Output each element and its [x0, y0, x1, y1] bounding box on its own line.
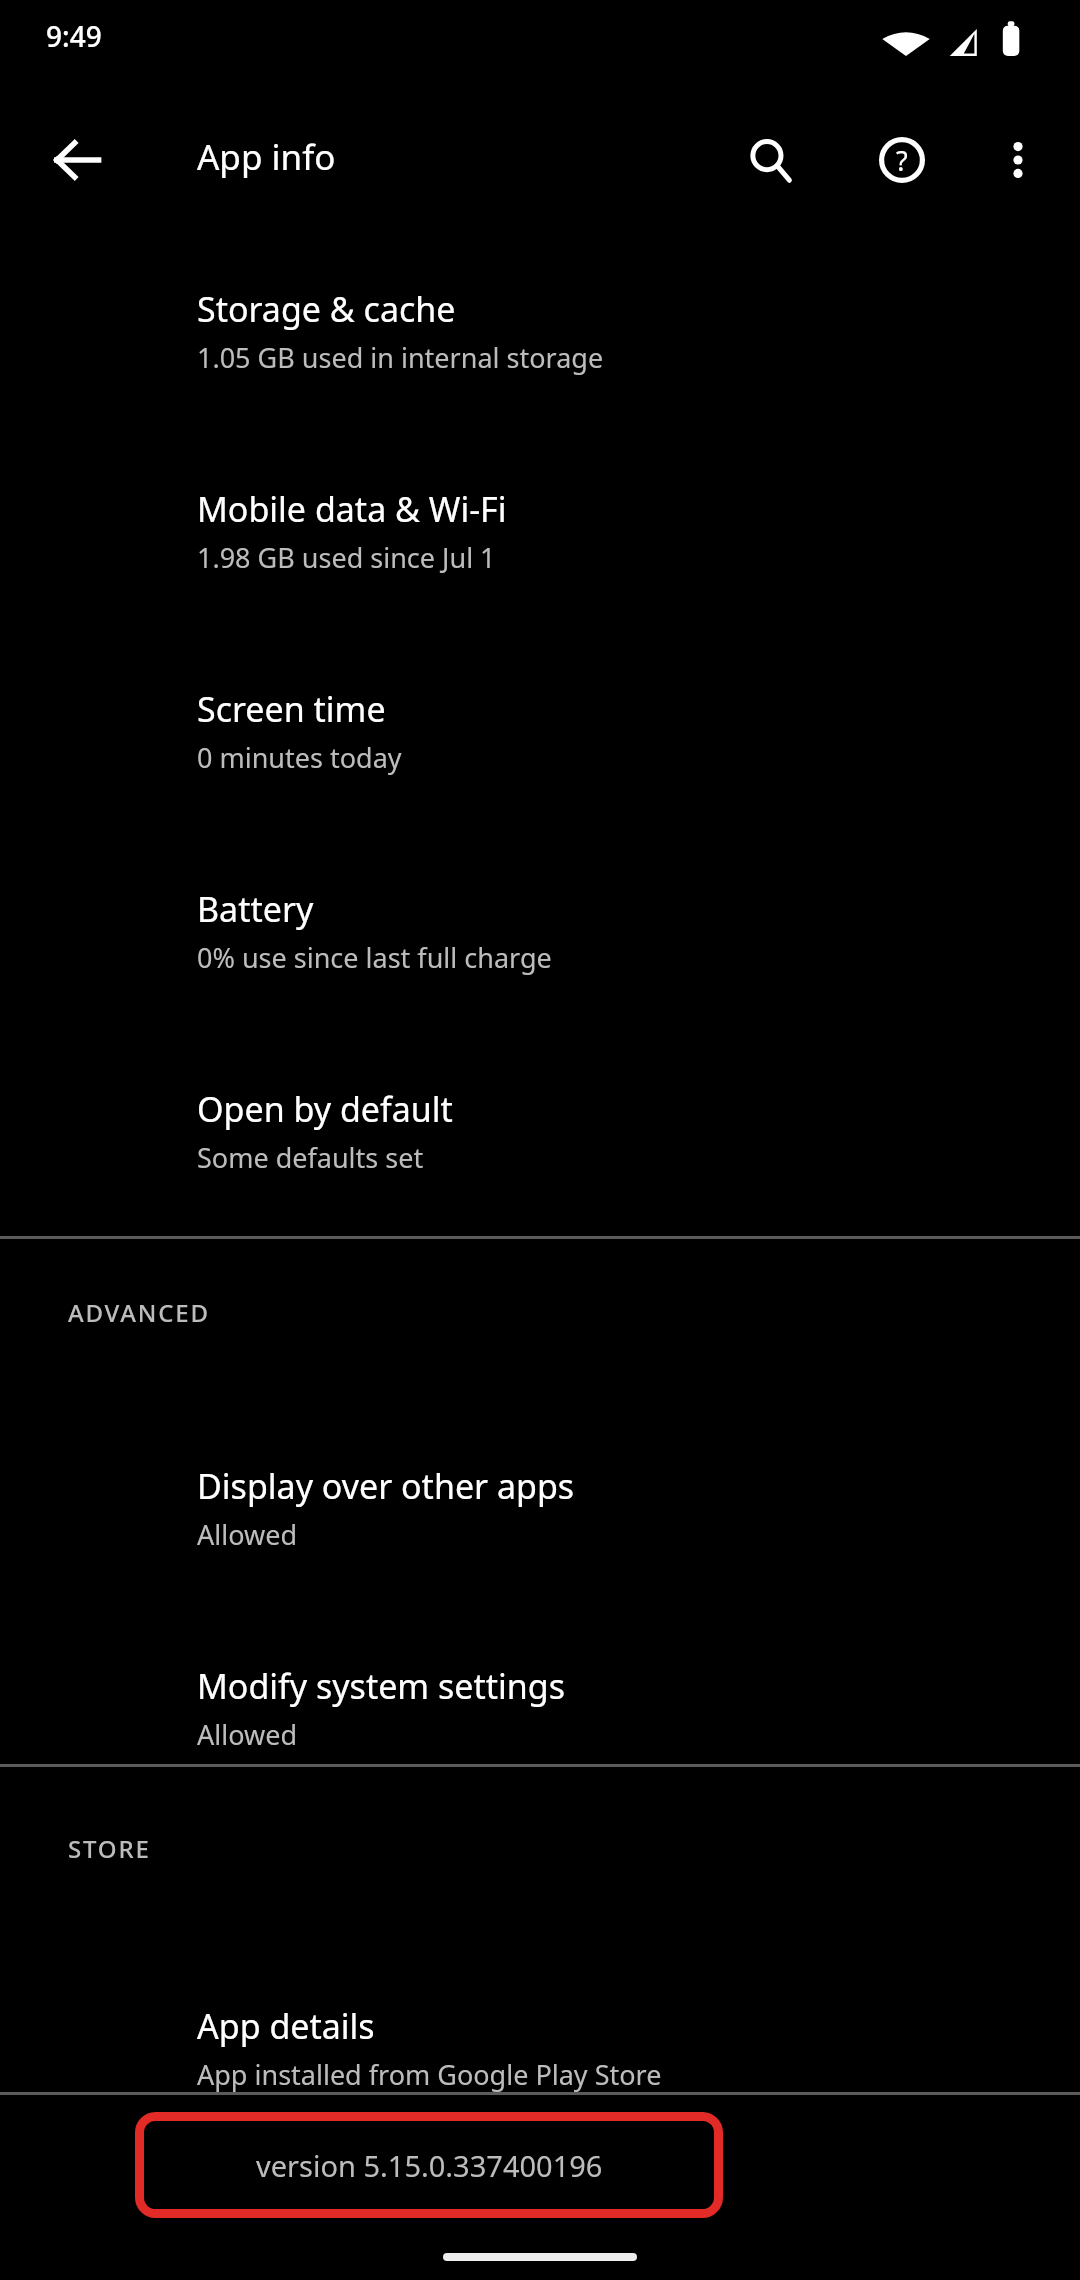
- staticText: version 5.15.0.337400196: [256, 2146, 603, 2185]
- staticText: App details: [197, 2003, 375, 2049]
- staticText: Modify system settings: [197, 1663, 565, 1709]
- staticText: Battery: [197, 886, 314, 932]
- button[interactable]: Storage & cache: [0, 268, 1080, 418]
- staticText: 1.98 GB used since Jul 1: [197, 539, 496, 576]
- staticText: 0% use since last full charge: [197, 939, 552, 976]
- button[interactable]: Screen time: [0, 668, 1080, 818]
- staticText: 1.05 GB used in internal storage: [197, 339, 604, 376]
- staticText: App info: [197, 133, 336, 181]
- staticText: App installed from Google Play Store: [197, 2056, 662, 2093]
- button[interactable]: Battery: [0, 868, 1080, 1018]
- staticText: Allowed: [197, 1516, 298, 1553]
- staticText: Screen time: [197, 686, 386, 732]
- button[interactable]: Search: [722, 112, 818, 208]
- staticText: ADVANCED: [68, 1296, 210, 1329]
- staticText: Display over other apps: [197, 1463, 575, 1509]
- button[interactable]: Modify system settings: [0, 1645, 1080, 1795]
- button[interactable]: App details: [0, 1985, 1080, 2135]
- staticText: Storage & cache: [197, 286, 456, 332]
- staticText: 0 minutes today: [197, 739, 402, 776]
- button[interactable]: version 5.15.0.337400196: [135, 2112, 723, 2218]
- staticText: Open by default: [197, 1086, 453, 1132]
- staticText: ?: [896, 142, 908, 179]
- staticText: 9:49: [46, 17, 102, 55]
- button[interactable]: Back: [29, 112, 125, 208]
- button[interactable]: Help: [854, 112, 950, 208]
- button[interactable]: Mobile data & Wi-Fi: [0, 468, 1080, 618]
- staticText: Allowed: [197, 1716, 298, 1753]
- button[interactable]: Display over other apps: [0, 1445, 1080, 1595]
- staticText: STORE: [68, 1832, 151, 1865]
- staticText: Some defaults set: [197, 1139, 424, 1176]
- button[interactable]: Open by default: [0, 1068, 1080, 1218]
- staticText: Mobile data & Wi-Fi: [197, 486, 507, 532]
- button[interactable]: More options: [970, 112, 1066, 208]
